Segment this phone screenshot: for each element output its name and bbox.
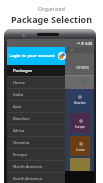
staticText: Package Selection	[11, 13, 93, 25]
staticText: 3:30	[85, 41, 92, 46]
staticText: Packages	[13, 68, 33, 74]
staticText: Home	[13, 80, 25, 86]
staticText: Europe	[75, 125, 86, 129]
staticText: Cruise	[76, 148, 85, 152]
button[interactable]: Oceania	[7, 137, 65, 149]
button[interactable]: Packages	[7, 65, 65, 77]
staticText: Oceania	[13, 140, 30, 146]
staticText: Africa	[13, 128, 25, 134]
staticText: Beaches	[13, 116, 30, 122]
button[interactable]: South America	[7, 173, 65, 183]
button[interactable]: CHAT	[7, 171, 94, 183]
button[interactable]: Beaches	[70, 89, 90, 110]
staticText: Europe	[13, 152, 28, 158]
button[interactable]: Beaches	[7, 113, 65, 125]
button[interactable]: Home	[7, 77, 65, 89]
staticText: South America	[13, 176, 42, 182]
staticText: OFFERS	[76, 65, 89, 70]
button[interactable]: India	[7, 89, 65, 101]
button[interactable]: Europe	[7, 149, 65, 161]
staticText: Login to your account	[9, 53, 55, 59]
staticText: Organized	[38, 5, 65, 12]
other: Search	[81, 78, 87, 84]
staticText: Asia	[13, 104, 22, 110]
button[interactable]: Africa	[7, 125, 65, 137]
button[interactable]: Asia	[7, 101, 65, 113]
button[interactable]: Cruise	[70, 136, 90, 156]
staticText: India	[13, 92, 24, 98]
button[interactable]: Europe	[70, 113, 90, 133]
button[interactable]: North America	[7, 161, 65, 173]
staticText: North America	[13, 164, 42, 170]
staticText: Beaches	[74, 101, 86, 105]
